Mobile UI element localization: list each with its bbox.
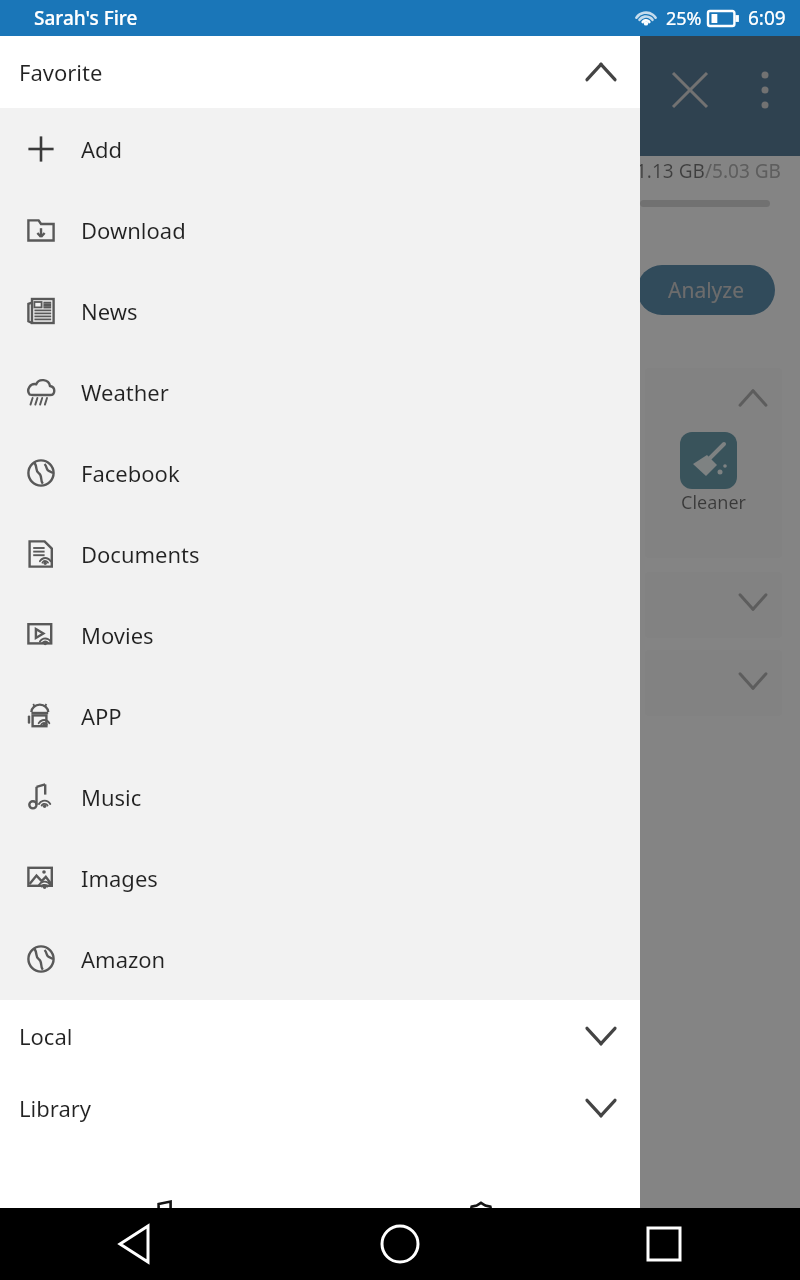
button[interactable]: Settings <box>320 1184 640 1280</box>
staticText: Movies <box>81 620 154 650</box>
staticText: Facebook <box>81 458 180 488</box>
staticText: APP <box>81 701 122 731</box>
button[interactable]: News <box>0 270 640 351</box>
staticText: News <box>81 296 138 326</box>
button[interactable]: Exit <box>0 1184 320 1280</box>
staticText: /5.03 GB <box>705 158 781 184</box>
button[interactable]: Download <box>0 189 640 270</box>
staticText: Music <box>81 782 142 812</box>
button[interactable]: Analyze <box>637 265 775 315</box>
button[interactable]: Add <box>0 108 640 189</box>
staticText: Local <box>19 1021 586 1051</box>
button[interactable]: Images <box>0 837 640 918</box>
staticText: Amazon <box>81 944 166 974</box>
button[interactable]: Local <box>0 1000 640 1072</box>
staticText: 1.13 GB <box>636 158 705 184</box>
button[interactable]: Documents <box>0 513 640 594</box>
button[interactable]: Amazon <box>0 918 640 999</box>
staticText: Documents <box>81 539 200 569</box>
staticText: Exit <box>144 1237 177 1263</box>
button[interactable]: Facebook <box>0 432 640 513</box>
button[interactable]: Favorite <box>0 36 640 108</box>
button[interactable]: Movies <box>0 594 640 675</box>
button[interactable]: APP <box>0 675 640 756</box>
staticText: Favorite <box>19 57 586 87</box>
staticText: Cleaner <box>681 490 746 515</box>
staticText: Add <box>81 134 123 164</box>
button[interactable]: Music <box>0 756 640 837</box>
button[interactable]: Library <box>0 1072 640 1144</box>
staticText: 6:09 <box>748 5 786 31</box>
button[interactable]: Weather <box>0 351 640 432</box>
staticText: Library <box>19 1093 586 1123</box>
staticText: 25% <box>666 6 702 31</box>
staticText: Download <box>81 215 186 245</box>
staticText: Sarah's Fire <box>34 5 138 31</box>
staticText: Weather <box>81 377 169 407</box>
staticText: Analyze <box>668 276 745 305</box>
staticText: Images <box>81 863 158 893</box>
